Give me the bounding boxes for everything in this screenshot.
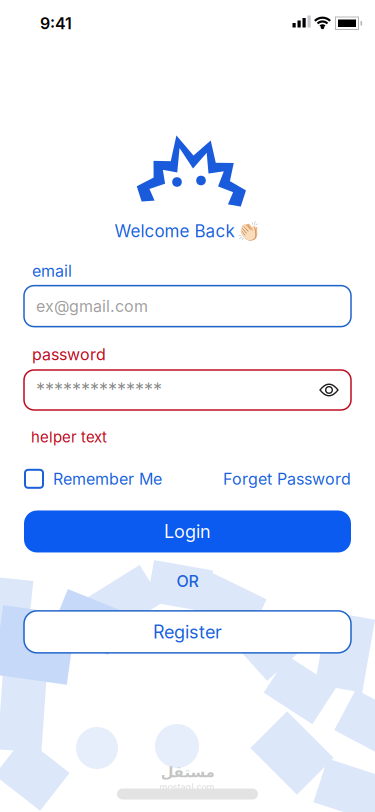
staticText: ex@gmail.com (36, 296, 148, 316)
staticText: Login (164, 521, 211, 542)
staticText: Forget Password (223, 469, 351, 488)
button[interactable]: Login (24, 510, 351, 552)
button[interactable]: Remember Me (25, 469, 162, 488)
staticText: email (32, 261, 72, 281)
staticText: password (32, 345, 106, 364)
staticText: OR (176, 571, 198, 591)
staticText: ************** (36, 379, 162, 401)
staticText: 👏🏻 (236, 220, 260, 242)
staticText: helper text (31, 428, 107, 446)
button[interactable]: Forget Password (223, 469, 351, 488)
staticText: مستقل (160, 763, 214, 781)
staticText: Remember Me (53, 469, 162, 488)
button[interactable] (319, 384, 339, 396)
staticText: Welcome Back (114, 221, 234, 241)
staticText: Register (153, 621, 222, 643)
button[interactable]: Register (24, 611, 351, 653)
staticText: mostaql.com (159, 782, 214, 792)
staticText: 9:41 (40, 14, 72, 33)
